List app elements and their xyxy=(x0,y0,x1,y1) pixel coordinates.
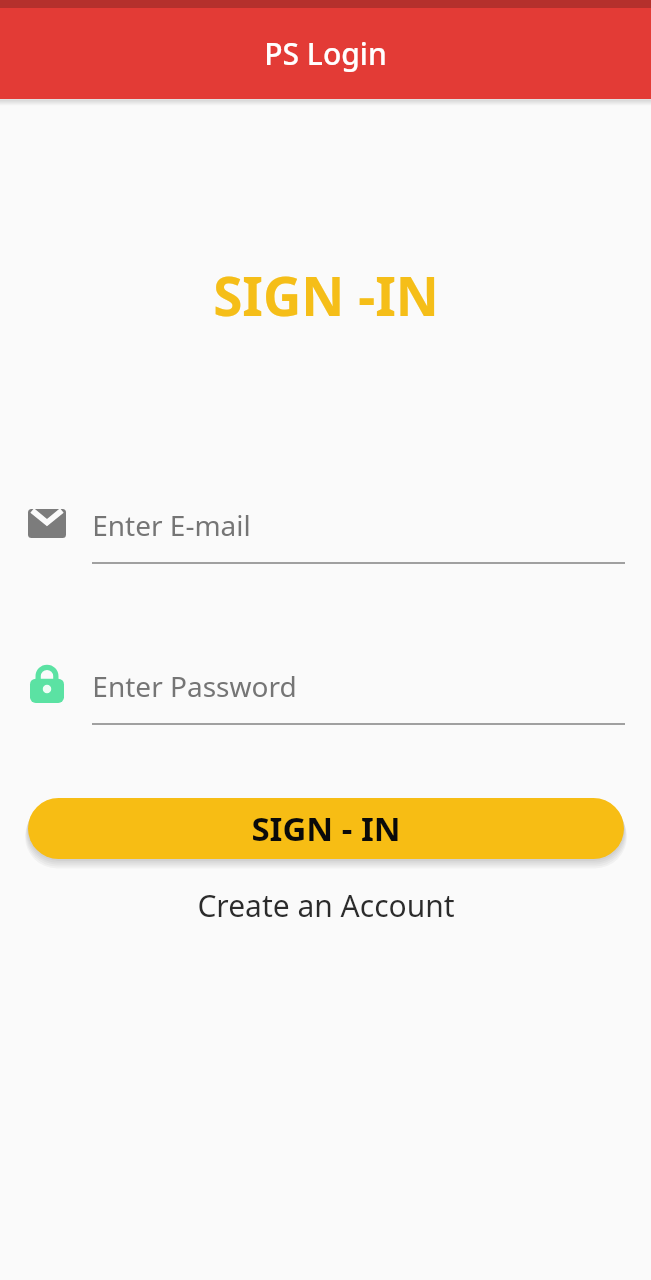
other: Email xyxy=(27,503,67,543)
staticText: PS Login xyxy=(264,33,387,74)
staticText: Create an Account xyxy=(197,885,455,926)
other: Password xyxy=(27,664,67,704)
button[interactable]: Enter E-mail xyxy=(92,503,625,564)
staticText: Enter Password xyxy=(92,667,297,705)
button[interactable]: Create an Account xyxy=(185,879,467,932)
staticText: Enter E-mail xyxy=(92,506,251,544)
button[interactable]: Enter Password xyxy=(92,664,625,725)
staticText: SIGN - IN xyxy=(251,806,401,851)
staticText: SIGN -IN xyxy=(213,259,439,331)
button[interactable]: SIGN - IN xyxy=(28,798,624,859)
